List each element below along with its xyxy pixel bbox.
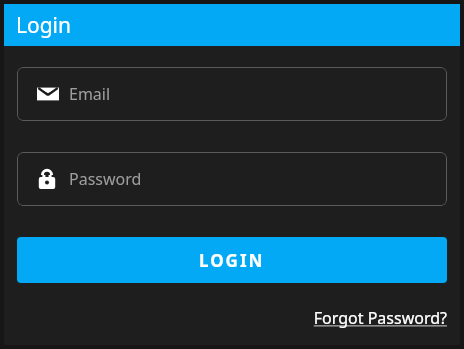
button[interactable]: Forgot Password?: [313, 305, 460, 331]
staticText: Forgot Password?: [313, 307, 447, 329]
staticText: LOGIN: [199, 249, 265, 272]
staticText: Login: [16, 11, 72, 40]
button[interactable]: Email: [17, 67, 447, 121]
button[interactable]: Password: [17, 152, 447, 206]
staticText: Email: [69, 83, 111, 105]
button[interactable]: LOGIN: [17, 237, 447, 283]
staticText: Password: [69, 168, 142, 190]
